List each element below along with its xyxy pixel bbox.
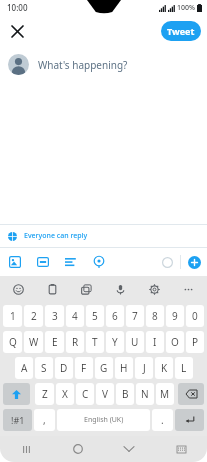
- button[interactable]: 5: [86, 305, 104, 327]
- staticText: English (UK): [84, 415, 124, 425]
- button[interactable]: 8: [146, 305, 164, 327]
- button[interactable]: Enter: [175, 409, 204, 431]
- button[interactable]: Everyone can reply: [0, 225, 207, 247]
- staticText: !#1: [11, 414, 25, 426]
- staticText: X: [62, 387, 68, 401]
- button[interactable]: K: [155, 357, 173, 379]
- staticText: Z: [42, 387, 48, 401]
- staticText: V: [102, 387, 108, 401]
- button[interactable]: ,: [34, 409, 55, 431]
- button[interactable]: Change keyboard: [171, 439, 191, 459]
- button[interactable]: C: [76, 383, 94, 405]
- button[interactable]: Backspace: [178, 383, 204, 405]
- staticText: 7: [132, 309, 138, 323]
- staticText: W: [29, 335, 39, 349]
- button[interactable]: F: [75, 357, 93, 379]
- button[interactable]: O: [166, 331, 184, 353]
- staticText: J: [143, 361, 146, 375]
- button[interactable]: Z: [35, 383, 54, 405]
- staticText: Y: [112, 335, 118, 349]
- button[interactable]: Clipboard: [43, 280, 62, 299]
- button[interactable]: 1: [3, 305, 22, 327]
- staticText: C: [82, 387, 89, 401]
- button[interactable]: D: [55, 357, 73, 379]
- staticText: N: [141, 387, 149, 401]
- staticText: I: [153, 335, 157, 349]
- button[interactable]: Profile: [8, 54, 29, 75]
- button[interactable]: 3: [45, 305, 64, 327]
- staticText: E: [52, 335, 58, 349]
- staticText: Q: [9, 335, 17, 349]
- staticText: What's happening?: [38, 58, 128, 72]
- button[interactable]: H: [115, 357, 133, 379]
- staticText: Everyone can reply: [24, 231, 88, 241]
- button[interactable]: Hide keyboard: [119, 439, 139, 459]
- button[interactable]: R: [66, 331, 84, 353]
- button[interactable]: 6: [106, 305, 124, 327]
- button[interactable]: Emoji: [9, 280, 28, 299]
- button[interactable]: W: [24, 331, 43, 353]
- button[interactable]: Add tweet: [188, 256, 201, 269]
- staticText: 0: [192, 309, 198, 323]
- staticText: 2: [31, 309, 37, 323]
- button[interactable]: 2: [24, 305, 43, 327]
- button[interactable]: .: [152, 409, 173, 431]
- button[interactable]: Settings: [145, 280, 164, 299]
- staticText: 6: [112, 309, 118, 323]
- button[interactable]: V: [96, 383, 114, 405]
- staticText: F: [81, 361, 87, 375]
- button[interactable]: I: [146, 331, 164, 353]
- button[interactable]: Media: [6, 253, 24, 271]
- staticText: 10:00: [7, 2, 28, 13]
- staticText: ,: [43, 413, 46, 427]
- staticText: B: [122, 387, 129, 401]
- button[interactable]: Voice input: [111, 280, 130, 299]
- button[interactable]: !#1: [3, 409, 32, 431]
- button[interactable]: Close: [5, 19, 29, 43]
- staticText: 5: [92, 309, 98, 323]
- button[interactable]: English (UK): [57, 409, 150, 431]
- button[interactable]: T: [86, 331, 104, 353]
- button[interactable]: Location: [90, 253, 108, 271]
- button[interactable]: U: [126, 331, 144, 353]
- staticText: U: [131, 335, 139, 349]
- button[interactable]: E: [45, 331, 64, 353]
- button[interactable]: M: [156, 383, 174, 405]
- staticText: M: [160, 387, 170, 401]
- staticText: R: [72, 335, 79, 349]
- button[interactable]: Poll: [62, 253, 80, 271]
- button[interactable]: J: [135, 357, 153, 379]
- button[interactable]: X: [56, 383, 74, 405]
- staticText: H: [120, 361, 128, 375]
- button[interactable]: A: [15, 357, 33, 379]
- button[interactable]: Tweet: [161, 21, 201, 41]
- button[interactable]: 7: [126, 305, 144, 327]
- button[interactable]: Y: [106, 331, 124, 353]
- button[interactable]: Home: [68, 439, 88, 459]
- staticText: D: [60, 361, 68, 375]
- staticText: Tweet: [167, 25, 195, 37]
- button[interactable]: N: [136, 383, 154, 405]
- staticText: .: [161, 413, 164, 427]
- button[interactable]: 0: [186, 305, 204, 327]
- button[interactable]: G: [95, 357, 113, 379]
- staticText: G: [100, 361, 108, 375]
- button[interactable]: Stickers: [77, 280, 96, 299]
- staticText: A: [21, 361, 28, 375]
- staticText: 4: [72, 309, 78, 323]
- button[interactable]: Shift: [3, 383, 30, 405]
- button[interactable]: 9: [166, 305, 184, 327]
- button[interactable]: S: [35, 357, 53, 379]
- button[interactable]: Q: [3, 331, 22, 353]
- button[interactable]: Recents: [16, 439, 36, 459]
- button[interactable]: P: [186, 331, 204, 353]
- staticText: L: [181, 361, 187, 375]
- button[interactable]: L: [175, 357, 193, 379]
- button[interactable]: 4: [66, 305, 84, 327]
- button[interactable]: More options: [179, 280, 198, 299]
- button[interactable]: B: [116, 383, 134, 405]
- button[interactable]: GIF: [34, 253, 52, 271]
- staticText: P: [192, 335, 199, 349]
- staticText: 1: [10, 309, 16, 323]
- staticText: K: [161, 361, 168, 375]
